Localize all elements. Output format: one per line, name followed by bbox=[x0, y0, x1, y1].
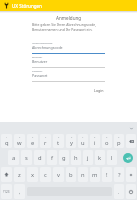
button[interactable]: More suggestions bbox=[128, 125, 134, 131]
staticText: Passwort bbox=[32, 73, 48, 78]
staticText: h bbox=[74, 154, 78, 162]
staticText: 8 bbox=[94, 136, 96, 139]
staticText: t bbox=[57, 139, 60, 147]
button[interactable]: Emoji bbox=[126, 167, 136, 182]
staticText: v bbox=[57, 171, 60, 179]
button[interactable]: ? bbox=[114, 167, 124, 182]
staticText: Passwort bbox=[32, 69, 43, 72]
staticText: e bbox=[31, 139, 35, 147]
button[interactable]: 4 bbox=[40, 134, 51, 148]
button[interactable]: k bbox=[95, 150, 105, 165]
button[interactable]: 3 bbox=[27, 134, 38, 148]
button[interactable]: s bbox=[21, 150, 32, 165]
button[interactable]: a bbox=[8, 150, 19, 165]
staticText: 6 bbox=[71, 136, 73, 139]
staticText: a bbox=[12, 154, 16, 162]
staticText: o bbox=[105, 139, 109, 147]
staticText: UX Störungen bbox=[12, 3, 42, 9]
staticText: Anmeldung bbox=[56, 15, 82, 21]
staticText: z bbox=[18, 171, 21, 179]
button[interactable]: m bbox=[90, 167, 100, 182]
staticText: 1 bbox=[6, 136, 8, 139]
button[interactable]: h bbox=[71, 150, 81, 165]
staticText: x bbox=[31, 171, 35, 179]
staticText: 7 bbox=[82, 136, 84, 139]
staticText: d bbox=[38, 154, 42, 162]
button[interactable]: 2 bbox=[14, 134, 25, 148]
button[interactable]: . bbox=[114, 184, 124, 199]
button[interactable]: Login bbox=[93, 87, 105, 94]
button[interactable]: l bbox=[107, 150, 117, 165]
staticText: Benutzer bbox=[32, 59, 48, 64]
staticText: ! bbox=[106, 171, 108, 179]
button[interactable]: n bbox=[78, 167, 88, 182]
staticText: y bbox=[70, 139, 73, 147]
staticText: j bbox=[87, 154, 89, 162]
button[interactable]: Shift bbox=[1, 167, 12, 182]
button[interactable]: , bbox=[14, 184, 25, 199]
staticText: 0 bbox=[118, 136, 120, 139]
staticText: r bbox=[44, 139, 47, 147]
button[interactable]: 6 bbox=[66, 134, 76, 148]
button[interactable]: v bbox=[53, 167, 64, 182]
staticText: 3 bbox=[32, 136, 34, 139]
staticText: k bbox=[98, 154, 102, 162]
staticText: n bbox=[81, 171, 85, 179]
button[interactable]: 9 bbox=[102, 134, 112, 148]
staticText: g bbox=[62, 154, 66, 162]
button[interactable]: Backspace bbox=[126, 134, 136, 148]
button[interactable]: 0 bbox=[114, 134, 124, 148]
staticText: Benutzer bbox=[32, 55, 43, 58]
staticText: q bbox=[5, 139, 9, 147]
button[interactable]: j bbox=[83, 150, 93, 165]
button[interactable]: c bbox=[40, 167, 51, 182]
button[interactable]: 1 bbox=[1, 134, 12, 148]
button[interactable]: z bbox=[14, 167, 25, 182]
button[interactable]: b bbox=[66, 167, 76, 182]
button[interactable]: Enter bbox=[119, 150, 136, 165]
staticText: b bbox=[69, 171, 73, 179]
button[interactable]: 5 bbox=[53, 134, 64, 148]
button[interactable]: Emoji bbox=[126, 184, 136, 199]
button[interactable]: ! bbox=[102, 167, 112, 182]
button[interactable]: App icon bbox=[2, 1, 11, 10]
staticText: f bbox=[51, 154, 53, 162]
button[interactable]: 8 bbox=[90, 134, 100, 148]
staticText: 2 bbox=[19, 136, 21, 139]
staticText: Login bbox=[94, 88, 104, 93]
staticText: Abrechnungscode bbox=[32, 45, 63, 50]
staticText: i bbox=[94, 139, 96, 147]
staticText: ? bbox=[118, 171, 121, 179]
staticText: 9 bbox=[106, 136, 108, 139]
staticText: m bbox=[92, 171, 98, 179]
staticText: p bbox=[117, 139, 121, 147]
staticText: u bbox=[81, 139, 85, 147]
staticText: , bbox=[19, 189, 21, 195]
staticText: Bitte geben Sie Ihren Abrechnungscode, B… bbox=[32, 22, 105, 32]
button[interactable]: 7 bbox=[78, 134, 88, 148]
staticText: . bbox=[118, 189, 120, 195]
staticText: Abrechnungscode bbox=[32, 41, 53, 44]
staticText: ?123 bbox=[3, 190, 10, 194]
staticText: 4 bbox=[45, 136, 47, 139]
staticText: c bbox=[44, 171, 47, 179]
button[interactable]: ?123 bbox=[1, 184, 12, 199]
staticText: s bbox=[25, 154, 28, 162]
button[interactable]: g bbox=[59, 150, 69, 165]
button[interactable]: d bbox=[34, 150, 45, 165]
staticText: 5 bbox=[58, 136, 60, 139]
button[interactable]: x bbox=[27, 167, 38, 182]
staticText: w bbox=[17, 139, 22, 147]
staticText: l bbox=[111, 154, 113, 162]
button[interactable]: f bbox=[47, 150, 57, 165]
